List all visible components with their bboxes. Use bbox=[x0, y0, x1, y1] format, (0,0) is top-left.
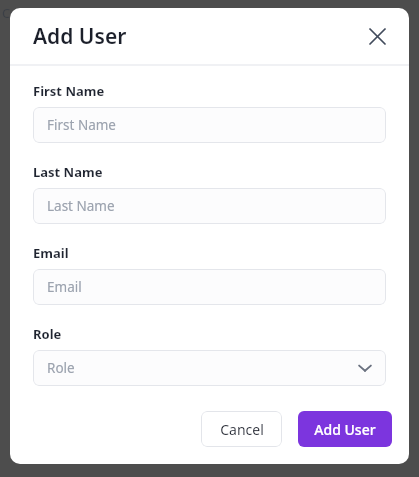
button[interactable]: Email bbox=[33, 269, 386, 305]
staticText: Contact Tracker bbox=[119, 4, 217, 22]
staticText: Role bbox=[47, 359, 75, 377]
button[interactable]: Add User bbox=[298, 411, 392, 447]
staticText: Last Name bbox=[47, 197, 115, 215]
button[interactable]: Last Name bbox=[33, 188, 386, 224]
staticText: Role bbox=[33, 325, 62, 343]
staticText: Co bbox=[2, 4, 19, 22]
staticText: Add User bbox=[33, 22, 127, 51]
staticText: Add User bbox=[314, 420, 376, 439]
button[interactable]: Close bbox=[362, 21, 392, 51]
staticText: First Name bbox=[47, 116, 116, 134]
button[interactable]: First Name bbox=[33, 107, 386, 143]
staticText: Email bbox=[33, 244, 69, 262]
button[interactable]: Cancel bbox=[201, 411, 282, 447]
staticText: First Name bbox=[33, 82, 105, 100]
staticText: Email bbox=[47, 278, 82, 296]
button[interactable]: Select role bbox=[33, 350, 386, 386]
staticText: Cancel bbox=[220, 420, 264, 439]
staticText: Last Name bbox=[33, 163, 103, 181]
